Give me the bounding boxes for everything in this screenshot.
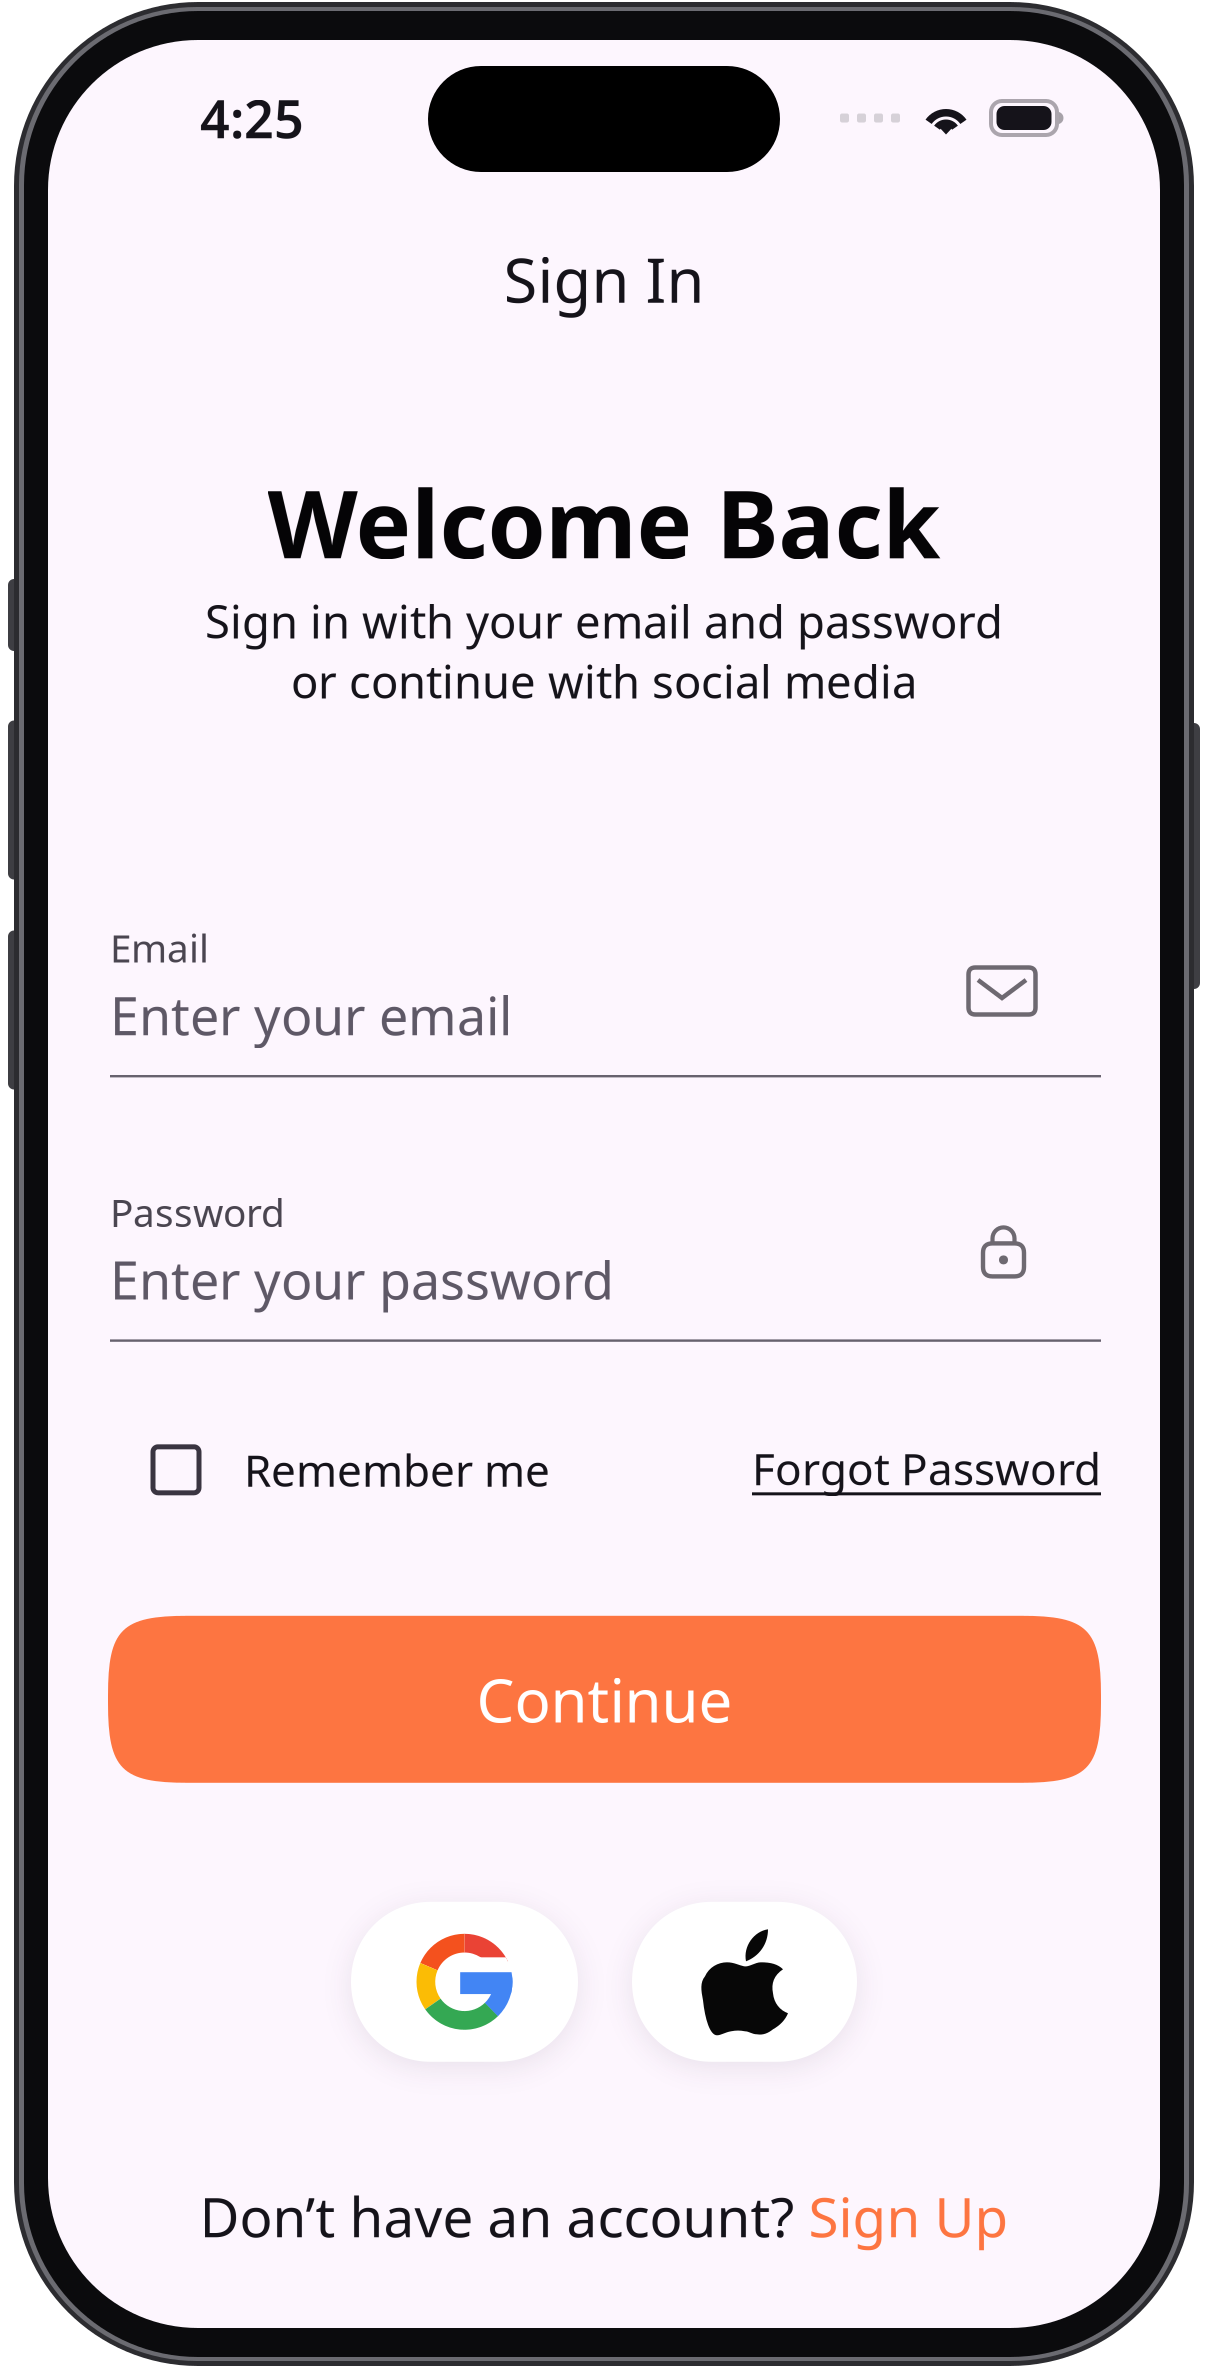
staticText: Enter your password bbox=[110, 1245, 614, 1314]
button[interactable]: Continue with Apple bbox=[632, 1902, 857, 2062]
staticText: Don’t have an account? bbox=[199, 2180, 808, 2252]
staticText: Continue bbox=[476, 1659, 732, 1739]
staticText: Enter your email bbox=[110, 980, 512, 1050]
staticText: Sign In bbox=[503, 238, 704, 320]
staticText: Remember me bbox=[244, 1441, 550, 1499]
staticText: Sign Up bbox=[808, 2180, 1008, 2252]
button[interactable]: Don’t have an account? bbox=[199, 2183, 1008, 2249]
staticText: Email bbox=[110, 922, 209, 973]
staticText: Welcome Back bbox=[267, 460, 940, 584]
button[interactable]: Forgot Password bbox=[752, 1442, 1101, 1498]
staticText: or continue with social media bbox=[291, 651, 917, 711]
button[interactable]: Remember me bbox=[153, 1442, 550, 1498]
staticText: Sign in with your email and password bbox=[205, 591, 1003, 651]
staticText: 4:25 bbox=[200, 83, 304, 153]
button[interactable]: Continue bbox=[108, 1616, 1101, 1783]
staticText: Password bbox=[110, 1186, 285, 1237]
staticText: Forgot Password bbox=[752, 1439, 1101, 1497]
button[interactable]: Continue with Google bbox=[351, 1902, 578, 2062]
